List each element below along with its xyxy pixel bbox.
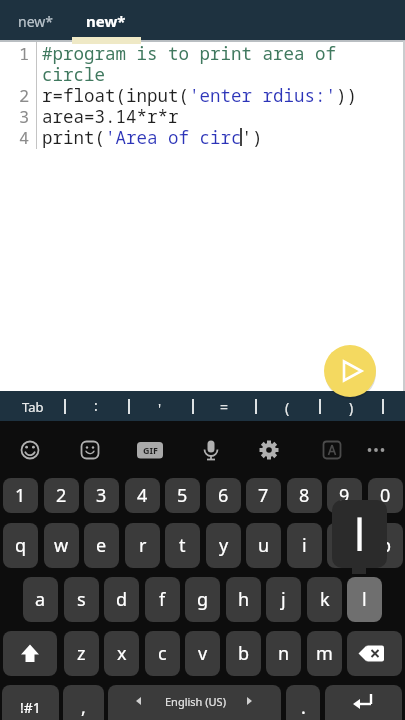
- staticText: w: [54, 533, 69, 558]
- button[interactable]: :: [0, 391, 276, 419]
- button[interactable]: 2: [44, 478, 79, 513]
- button[interactable]: y: [206, 523, 241, 568]
- button[interactable]: k: [307, 577, 342, 622]
- button[interactable]: e: [84, 523, 119, 568]
- staticText: y: [219, 533, 229, 558]
- button[interactable]: [133, 433, 167, 467]
- button[interactable]: f: [145, 577, 180, 622]
- button[interactable]: [0, 0, 71, 41]
- staticText: Tab: [22, 398, 44, 416]
- button[interactable]: 9: [327, 478, 362, 513]
- button[interactable]: g: [185, 577, 220, 622]
- staticText: (: [285, 398, 290, 417]
- staticText: GIF: [143, 444, 158, 456]
- staticText: e: [96, 533, 107, 558]
- button[interactable]: n: [266, 631, 301, 676]
- staticText: m: [316, 641, 333, 666]
- staticText: 5: [177, 483, 188, 508]
- staticText: 4: [137, 483, 148, 508]
- staticText: 9: [339, 483, 350, 508]
- button[interactable]: m: [307, 631, 342, 676]
- button[interactable]: [324, 345, 376, 397]
- staticText: l: [362, 587, 367, 612]
- button[interactable]: 4: [125, 478, 160, 513]
- button[interactable]: j: [266, 577, 301, 622]
- staticText: new*: [86, 11, 126, 31]
- staticText: 7: [258, 483, 269, 508]
- button[interactable]: s: [64, 577, 99, 622]
- staticText: q: [15, 533, 27, 558]
- staticText: h: [238, 587, 250, 612]
- button[interactable]: 7: [246, 478, 281, 513]
- button[interactable]: p: [368, 523, 403, 568]
- button[interactable]: [194, 433, 228, 467]
- staticText: c: [158, 641, 167, 666]
- button[interactable]: ,: [63, 685, 104, 720]
- staticText: n: [278, 641, 290, 666]
- staticText: ,: [81, 695, 86, 720]
- staticText: b: [238, 641, 250, 666]
- button[interactable]: t: [165, 523, 200, 568]
- button[interactable]: z: [64, 631, 99, 676]
- staticText: f: [159, 587, 166, 612]
- button[interactable]: o: [327, 523, 362, 568]
- button[interactable]: 8: [287, 478, 322, 513]
- staticText: 1: [15, 483, 26, 508]
- staticText: r=float(input('enter rdius:')): [42, 83, 357, 107]
- button[interactable]: [3, 631, 57, 676]
- button[interactable]: .: [286, 685, 320, 720]
- button[interactable]: [72, 0, 141, 41]
- staticText: 4: [19, 126, 30, 149]
- button[interactable]: d: [104, 577, 139, 622]
- staticText: s: [77, 587, 86, 612]
- button[interactable]: 3: [84, 478, 119, 513]
- button[interactable]: x: [104, 631, 139, 676]
- button[interactable]: [315, 433, 349, 467]
- staticText: j: [281, 587, 286, 612]
- button[interactable]: 1: [3, 478, 38, 513]
- button[interactable]: ): [171, 393, 405, 421]
- button[interactable]: c: [145, 631, 180, 676]
- button[interactable]: q: [3, 523, 38, 568]
- staticText: :: [94, 396, 98, 415]
- staticText: 2: [56, 483, 67, 508]
- button[interactable]: [73, 433, 107, 467]
- button[interactable]: r: [125, 523, 160, 568]
- button[interactable]: (: [107, 393, 405, 421]
- button[interactable]: [13, 433, 47, 467]
- staticText: l: [354, 505, 366, 564]
- button[interactable]: h: [226, 577, 261, 622]
- button[interactable]: i: [287, 523, 322, 568]
- staticText: g: [197, 587, 209, 612]
- button[interactable]: l: [347, 577, 382, 622]
- button[interactable]: ': [0, 394, 340, 422]
- staticText: 6: [218, 483, 229, 508]
- staticText: 1: [19, 42, 30, 65]
- button[interactable]: a: [23, 577, 58, 622]
- staticText: ): [349, 398, 354, 417]
- staticText: =: [220, 397, 229, 416]
- button[interactable]: u: [246, 523, 281, 568]
- button[interactable]: Tab: [0, 393, 213, 421]
- button[interactable]: [359, 433, 393, 467]
- button[interactable]: 0: [368, 478, 403, 513]
- staticText: a: [35, 587, 46, 612]
- button[interactable]: =: [44, 392, 404, 420]
- button[interactable]: !#1: [2, 685, 59, 720]
- button[interactable]: [252, 433, 286, 467]
- staticText: 8: [299, 483, 310, 508]
- button[interactable]: 5: [165, 478, 200, 513]
- button[interactable]: b: [226, 631, 261, 676]
- staticText: i: [302, 533, 307, 558]
- staticText: 0: [380, 483, 391, 508]
- button[interactable]: [325, 685, 402, 720]
- staticText: u: [258, 533, 270, 558]
- staticText: x: [117, 641, 127, 666]
- staticText: k: [320, 587, 330, 612]
- button[interactable]: v: [185, 631, 220, 676]
- button[interactable]: [347, 631, 402, 676]
- button[interactable]: w: [44, 523, 79, 568]
- button[interactable]: 6: [206, 478, 241, 513]
- button[interactable]: [108, 685, 281, 720]
